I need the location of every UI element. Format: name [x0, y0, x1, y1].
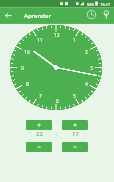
- button[interactable]: Decrease hours: [26, 142, 52, 152]
- staticText: 2: [85, 49, 88, 56]
- staticText: 15:17: [100, 2, 111, 7]
- staticText: 8: [26, 81, 29, 88]
- staticText: :: [56, 130, 58, 138]
- button[interactable]: Increase minutes: [62, 120, 88, 130]
- staticText: 7: [39, 93, 42, 100]
- button[interactable]: History: [84, 8, 99, 24]
- button[interactable]: Increase hours: [26, 120, 52, 130]
- button[interactable]: Decrease minutes: [62, 142, 88, 152]
- staticText: 9: [21, 65, 24, 72]
- staticText: 17: [72, 130, 79, 138]
- staticText: 10: [24, 49, 30, 56]
- staticText: Aprender: [24, 12, 51, 20]
- staticText: 4: [85, 81, 88, 88]
- staticText: 5: [73, 93, 76, 100]
- staticText: 11: [37, 37, 43, 44]
- staticText: 1: [73, 37, 76, 44]
- staticText: 6: [56, 98, 59, 105]
- button[interactable]: Settings: [99, 8, 114, 24]
- staticText: 12: [54, 32, 60, 39]
- staticText: 84%: [87, 2, 95, 7]
- button[interactable]: Back: [0, 8, 17, 24]
- staticText: 22: [36, 130, 43, 138]
- staticText: 3: [90, 65, 93, 72]
